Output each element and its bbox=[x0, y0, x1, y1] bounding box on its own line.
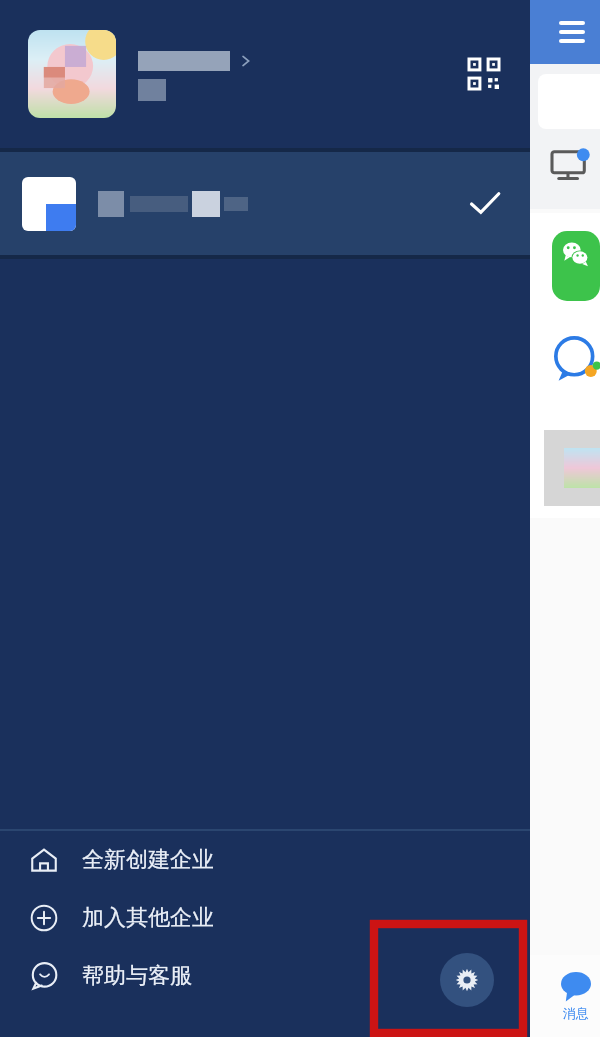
button[interactable]: 已选中 bbox=[0, 152, 530, 255]
button[interactable]: 全新创建企业 bbox=[0, 831, 530, 889]
button[interactable]: 帮助与客服 bbox=[0, 947, 530, 1005]
staticText: 消息 bbox=[563, 1005, 589, 1021]
staticText: 全新创建企业 bbox=[82, 846, 214, 874]
staticText: 帮助与客服 bbox=[82, 962, 192, 990]
button[interactable]: 加入其他企业 bbox=[0, 889, 530, 947]
button[interactable]: 二维码 bbox=[0, 0, 530, 148]
staticText: 加入其他企业 bbox=[82, 904, 214, 932]
button[interactable]: 已选中 bbox=[462, 181, 508, 227]
button[interactable]: 二维码 bbox=[460, 50, 508, 98]
button[interactable]: 设置 bbox=[440, 953, 494, 1007]
